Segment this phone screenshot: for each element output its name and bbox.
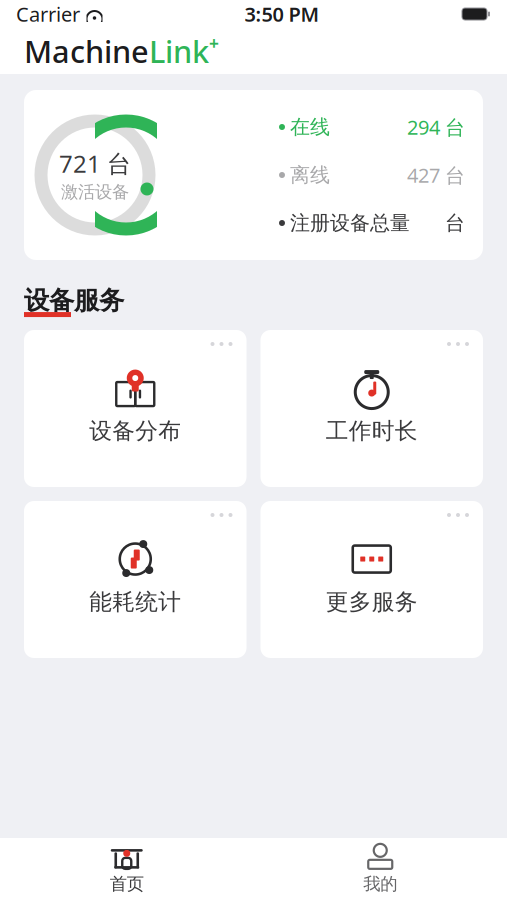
button[interactable]: 工作时长 <box>260 330 483 487</box>
staticText: 激活设备 <box>61 181 129 203</box>
staticText: 首页 <box>110 873 144 895</box>
staticText: 更多服务 <box>326 588 418 616</box>
staticText: Machine <box>24 31 149 71</box>
button[interactable]: 能耗统计 <box>24 501 246 658</box>
staticText: 3:50 PM <box>244 1 319 27</box>
staticText: 能耗统计 <box>89 588 181 616</box>
staticText: 设备服务 <box>24 285 124 316</box>
button[interactable]: 设备分布 <box>24 330 246 487</box>
staticText: 离线 <box>290 163 330 187</box>
staticText: 在线 <box>290 115 330 139</box>
staticText: Link <box>149 31 209 71</box>
staticText: + <box>209 32 219 55</box>
staticText: 我的 <box>363 873 397 895</box>
staticText: 设备分布 <box>89 417 181 445</box>
staticText: 721 台 <box>59 147 131 179</box>
staticText: 294 台 <box>407 114 465 140</box>
staticText: 427 台 <box>407 162 465 188</box>
button[interactable]: 更多服务 <box>260 501 483 658</box>
button[interactable]: 我的 <box>253 836 507 900</box>
staticText: 工作时长 <box>326 417 418 445</box>
button[interactable]: 首页 <box>0 836 253 900</box>
staticText: 注册设备总量 <box>290 211 410 235</box>
staticText: 台 <box>445 211 465 235</box>
staticText: Carrier <box>16 1 80 27</box>
